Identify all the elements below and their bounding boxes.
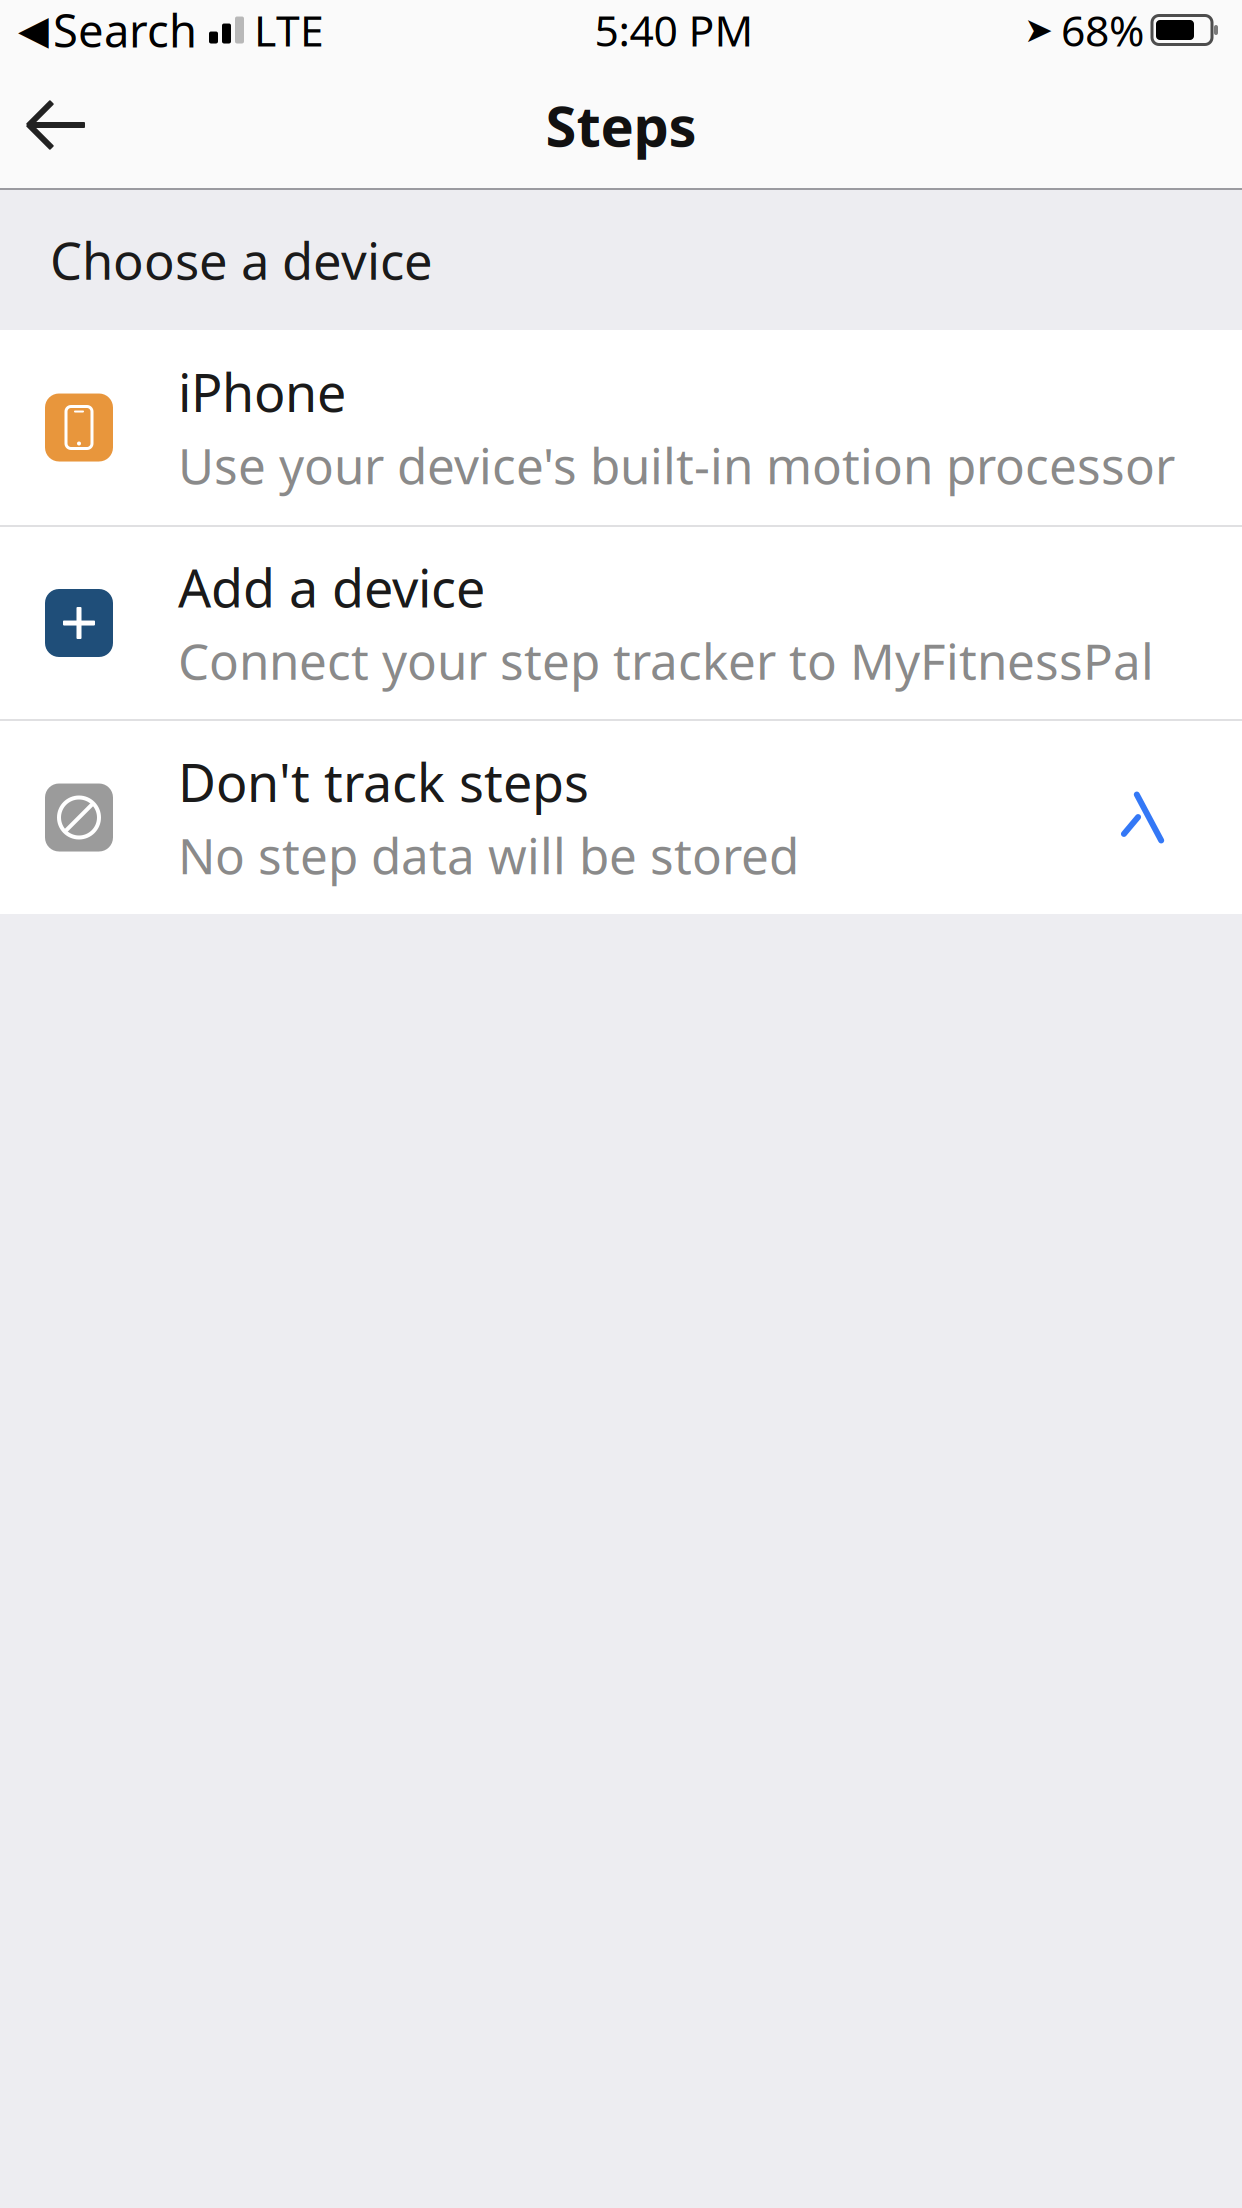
staticText: 68% (1061, 2, 1144, 58)
staticText: Steps (545, 88, 696, 162)
staticText: Connect your step tracker to MyFitnessPa… (178, 628, 1154, 693)
button[interactable]: Add a device (0, 527, 1242, 719)
staticText: 5:40 PM (594, 2, 753, 58)
staticText: Add a device (178, 553, 485, 622)
button[interactable]: Back (0, 60, 110, 190)
staticText: iPhone (178, 357, 346, 426)
staticText: ◀ (18, 7, 49, 53)
button[interactable]: iPhone (0, 330, 1242, 525)
staticText: Don't track steps (178, 747, 589, 816)
staticText: Choose a device (50, 226, 433, 294)
button[interactable]: Don't track steps (0, 721, 1242, 914)
staticText: ➤ (1024, 10, 1053, 50)
staticText: Use your device's built-in motion proces… (178, 432, 1175, 498)
staticText: No step data will be stored (178, 822, 799, 888)
staticText: LTE (254, 2, 324, 58)
staticText: Search (53, 0, 197, 60)
